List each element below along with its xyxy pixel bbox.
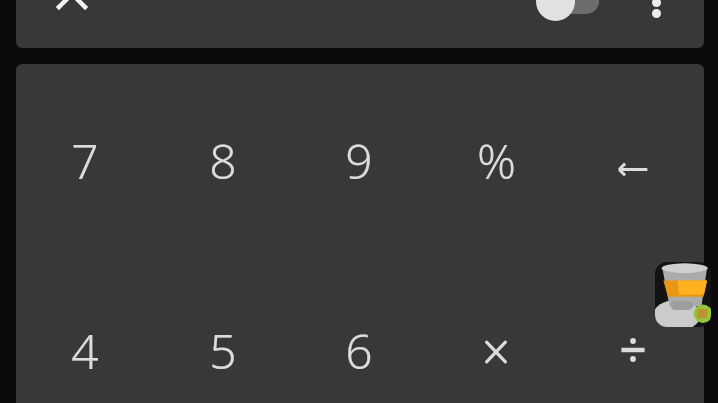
staticText: %	[477, 128, 516, 193]
button[interactable]: 7	[35, 110, 135, 210]
button[interactable]: 8	[173, 110, 273, 210]
button[interactable]: 4	[35, 300, 135, 400]
button[interactable]: 9	[309, 110, 409, 210]
button[interactable]: 5	[173, 300, 273, 400]
button[interactable]: %	[446, 110, 546, 210]
staticText: 9	[345, 128, 373, 193]
button[interactable]: Floating app bubble	[655, 262, 711, 327]
staticText: 6	[345, 318, 373, 383]
staticText: 4	[71, 318, 99, 383]
button[interactable]	[446, 300, 546, 400]
staticText: 5	[209, 318, 237, 383]
button[interactable]: Backspace	[583, 110, 683, 210]
button[interactable]: 6	[309, 300, 409, 400]
button[interactable]: Toggle scientific mode	[527, 0, 631, 25]
button[interactable]	[583, 300, 683, 400]
button[interactable]: More options	[632, 0, 680, 26]
button[interactable]: Close	[48, 0, 96, 18]
staticText: 7	[71, 128, 99, 193]
staticText: 8	[209, 128, 237, 193]
